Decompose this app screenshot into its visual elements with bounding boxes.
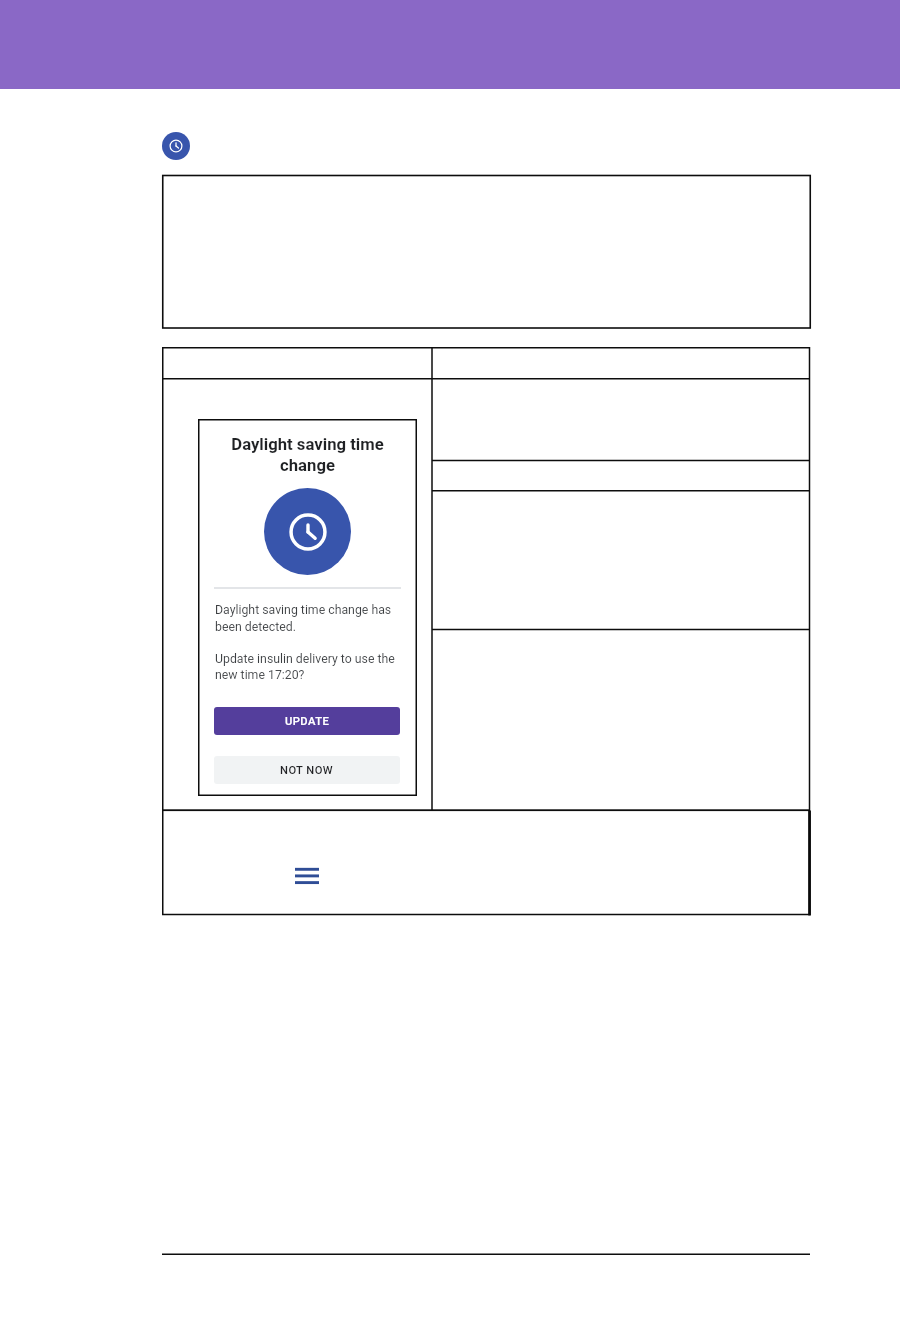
staticText: Daylight saving time change	[219, 435, 396, 475]
staticText: NOT NOW	[280, 764, 334, 777]
button[interactable]: Menu	[289, 856, 325, 888]
button[interactable]: UPDATE	[214, 707, 400, 735]
staticText: Daylight saving time change has been det…	[215, 603, 401, 682]
button[interactable]: Clock	[162, 132, 190, 160]
button[interactable]: NOT NOW	[214, 756, 400, 784]
staticText: UPDATE	[285, 715, 330, 728]
